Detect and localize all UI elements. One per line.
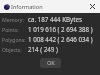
staticText: OK — [47, 59, 55, 67]
staticText: Memory: — [2, 16, 24, 23]
staticText: 1 019 616 ( 2 694 388 ) — [28, 25, 93, 33]
staticText: Objects: — [2, 46, 22, 53]
button[interactable]: Close — [85, 0, 100, 13]
staticText: ca. 187 444 KBytes — [28, 15, 82, 23]
staticText: Information — [11, 3, 43, 11]
staticText: Polygons: — [2, 36, 26, 43]
staticText: 1 008 442 ( 2 646 034 ) — [28, 35, 93, 43]
staticText: Points: — [2, 26, 19, 33]
button[interactable]: OK — [40, 58, 61, 68]
staticText: 214 ( 249 ) — [28, 45, 58, 53]
